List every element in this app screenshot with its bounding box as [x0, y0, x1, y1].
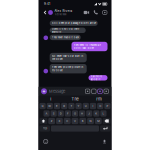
staticText: I: [92, 104, 93, 108]
button[interactable]: Z: [48, 118, 55, 124]
button[interactable]: Microphone: [104, 89, 108, 94]
button[interactable]: Voice input: [102, 139, 106, 144]
staticText: Guess it's not out there anymore: [52, 27, 79, 33]
staticText: Still been your package didn't arrive: [52, 22, 96, 25]
staticText: W: [48, 104, 51, 108]
button[interactable]: M: [95, 118, 102, 124]
button[interactable]: Emoji: [43, 139, 48, 144]
staticText: S: [53, 112, 55, 115]
button[interactable]: H: [79, 110, 85, 117]
staticText: They never made it back: [52, 36, 79, 39]
staticText: G: [74, 112, 76, 115]
staticText: L: [102, 112, 104, 115]
staticText: Q: [42, 104, 44, 108]
button[interactable]: Voice call: [94, 10, 98, 15]
staticText: X: [58, 119, 60, 123]
staticText: O: [99, 104, 101, 108]
button[interactable]: They sent you the picture in my closet: [50, 64, 87, 73]
button[interactable]: Ask more about it: [88, 75, 107, 80]
button[interactable]: Space: [51, 125, 99, 132]
staticText: E: [56, 104, 58, 108]
staticText: C: [66, 119, 68, 123]
staticText: M: [97, 119, 99, 123]
button[interactable]: A: [43, 110, 50, 117]
staticText: I: [50, 97, 51, 101]
button[interactable]: Q: [39, 103, 46, 109]
staticText: No never that's our stuff in the closet: [52, 54, 83, 61]
staticText: H: [81, 112, 83, 115]
button[interactable]: K: [93, 110, 99, 117]
button[interactable]: Guess it's not out there anymore: [50, 28, 86, 33]
staticText: R: [63, 104, 65, 108]
staticText: K: [95, 112, 97, 115]
staticText: D: [60, 112, 62, 115]
button[interactable]: C: [64, 118, 71, 124]
staticText: N: [89, 119, 91, 123]
button[interactable]: P: [104, 103, 110, 109]
button[interactable]: I: [90, 103, 96, 109]
button[interactable]: W: [47, 103, 53, 109]
button[interactable]: G: [72, 110, 78, 117]
button[interactable]: E: [54, 103, 60, 109]
staticText: V: [74, 119, 76, 123]
button[interactable]: The: [63, 96, 87, 102]
staticText: They sent you the picture in my closet: [52, 66, 83, 72]
staticText: Z: [51, 119, 53, 123]
button[interactable]: S: [51, 110, 57, 117]
button[interactable]: Key: [103, 118, 110, 124]
staticText: They need to reschedule both I had done: [73, 43, 100, 49]
button[interactable]: X: [56, 118, 63, 124]
button[interactable]: O: [97, 103, 103, 109]
button[interactable]: L: [100, 110, 106, 117]
button[interactable]: R: [61, 103, 67, 109]
staticText: A: [46, 112, 48, 115]
button[interactable]: N: [87, 118, 94, 124]
button[interactable]: More options: [103, 10, 107, 15]
button[interactable]: Return: [100, 125, 110, 132]
button[interactable]: J: [86, 110, 92, 117]
button[interactable]: D: [58, 110, 64, 117]
staticText: The: [71, 97, 78, 101]
button[interactable]: GIF: [91, 89, 96, 94]
staticText: Y: [78, 104, 80, 108]
button[interactable]: V: [72, 118, 78, 124]
button[interactable]: U: [83, 103, 89, 109]
button[interactable]: Stickers: [85, 89, 90, 94]
button[interactable]: ?123: [39, 125, 50, 132]
staticText: I'm: [96, 97, 102, 101]
button[interactable]: They never made it back: [50, 35, 81, 40]
button[interactable]: Still been your package didn't arrive: [50, 20, 98, 26]
staticText: P: [106, 104, 108, 108]
button[interactable]: B: [79, 118, 86, 124]
staticText: ?123: [43, 127, 47, 130]
staticText: F: [67, 112, 69, 115]
staticText: B: [82, 119, 84, 123]
button[interactable]: Add attachment: [41, 88, 47, 94]
button[interactable]: I: [38, 96, 63, 102]
staticText: Ask more about it: [90, 75, 101, 81]
button[interactable]: Back: [42, 8, 47, 17]
staticText: U: [85, 104, 87, 108]
staticText: 9:41: [44, 2, 50, 6]
button[interactable]: They need to reschedule both I had done: [71, 42, 107, 51]
button[interactable]: No never that's our stuff in the closet: [50, 53, 87, 62]
button[interactable]: T: [68, 103, 74, 109]
button[interactable]: Video call: [84, 10, 89, 15]
button[interactable]: Y: [75, 103, 82, 109]
button[interactable]: Key: [39, 118, 47, 124]
button[interactable]: I'm: [87, 96, 111, 102]
button[interactable]: Camera: [98, 89, 102, 94]
button[interactable]: Message: [47, 87, 85, 95]
staticText: T: [70, 104, 72, 108]
staticText: Alex Rivera: [54, 9, 72, 13]
staticText: J: [88, 112, 90, 115]
button[interactable]: F: [65, 110, 71, 117]
staticText: Active now: [54, 13, 66, 16]
staticText: Message: [49, 89, 65, 94]
